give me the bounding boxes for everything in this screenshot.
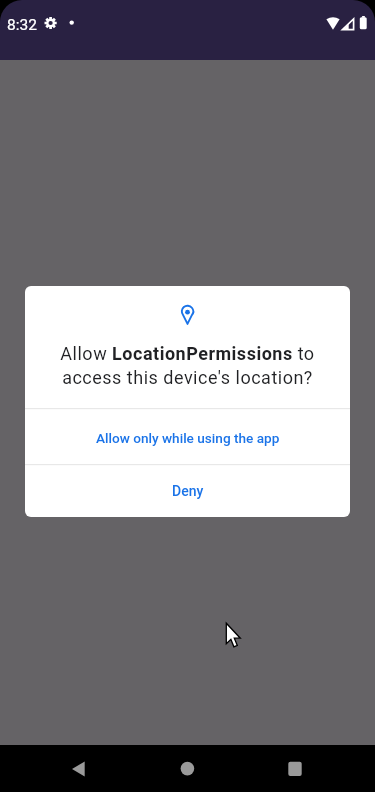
staticText: Deny (172, 483, 204, 499)
staticText: Allow only while using the app (96, 430, 280, 446)
button[interactable] (58, 749, 98, 789)
staticText: Allow LocationPermissions to access this… (49, 343, 326, 388)
button[interactable] (167, 749, 207, 789)
button[interactable]: Allow only while using the app (25, 410, 350, 465)
staticText: 8:32 (7, 16, 37, 34)
button[interactable]: Deny (25, 465, 350, 517)
button[interactable] (275, 749, 315, 789)
